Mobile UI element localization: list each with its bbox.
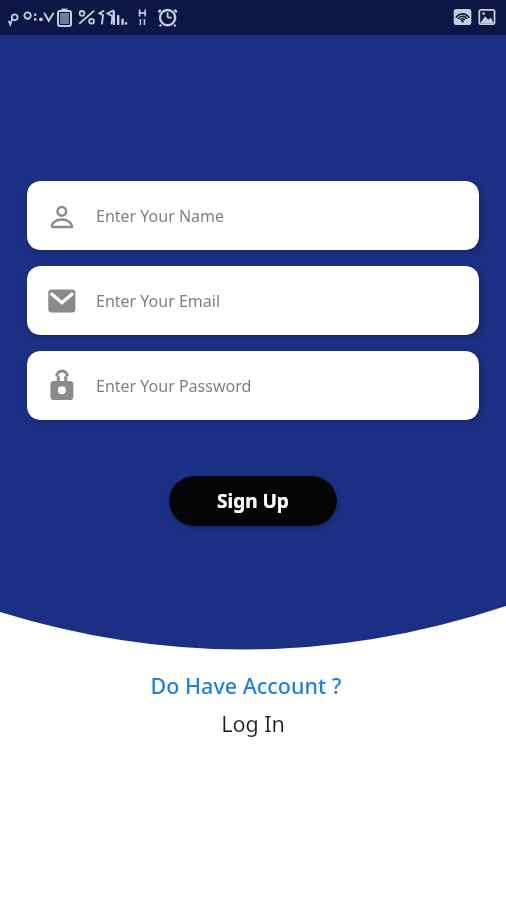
button[interactable]: Enter Your Email [27,266,479,335]
button[interactable]: Sign Up [169,476,337,526]
staticText: Sign Up [217,488,289,514]
button[interactable]: Enter Your Password [27,351,479,420]
staticText: Enter Your Name [96,205,225,227]
button[interactable]: Log In [0,709,506,738]
button[interactable]: Do Have Account ? [0,671,499,700]
staticText: Enter Your Password [96,375,252,397]
staticText: Enter Your Email [96,290,221,312]
button[interactable]: Enter Your Name [27,181,479,250]
